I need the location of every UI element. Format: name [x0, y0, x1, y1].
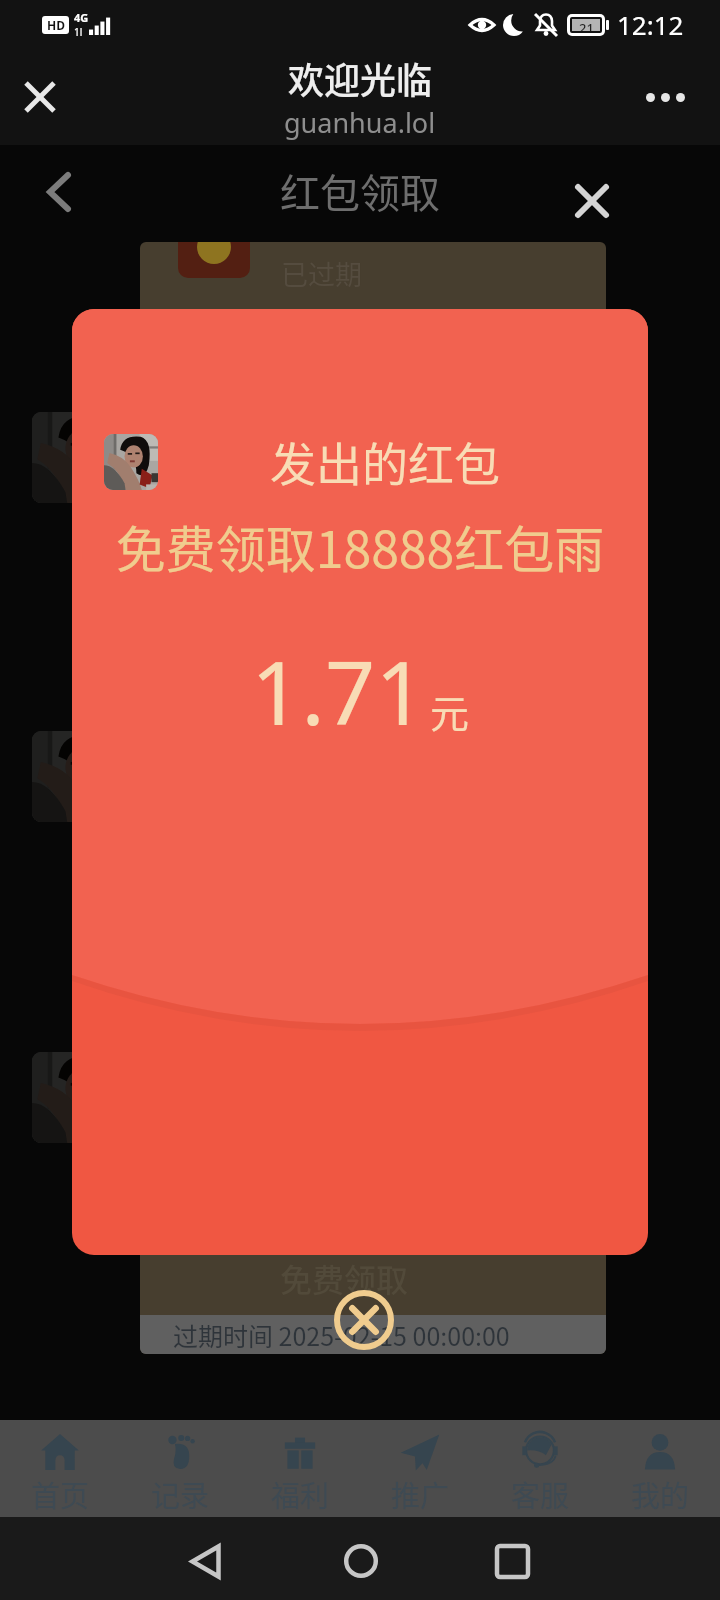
- button[interactable]: 我的: [600, 1420, 720, 1517]
- staticText: HD: [47, 17, 65, 33]
- staticText: 红包领取: [280, 162, 440, 220]
- staticText: 21: [579, 19, 594, 31]
- staticText: 免费领取: [280, 1255, 409, 1301]
- button[interactable]: 记录: [120, 1420, 240, 1517]
- button[interactable]: Back: [173, 1529, 237, 1593]
- staticText: 4G: [74, 10, 89, 25]
- staticText: 记录: [151, 1473, 210, 1515]
- staticText: 1.71: [251, 631, 426, 751]
- staticText: 推广: [391, 1473, 450, 1515]
- button[interactable]: 客服: [480, 1420, 600, 1517]
- staticText: 12:12: [617, 7, 684, 42]
- staticText: 发出的红包: [270, 428, 500, 495]
- staticText: guanhua.lol: [284, 104, 436, 141]
- staticText: 免费领取18888红包雨: [72, 510, 648, 582]
- staticText: 客服: [511, 1473, 570, 1515]
- button[interactable]: 福利: [240, 1420, 360, 1517]
- button[interactable]: Recents: [480, 1529, 544, 1593]
- button[interactable]: Back: [33, 168, 85, 220]
- button[interactable]: Close: [331, 1287, 397, 1353]
- staticText: 过期时间 2025-02-15 00:00:00: [173, 1317, 510, 1353]
- button[interactable]: 推广: [360, 1420, 480, 1517]
- button[interactable]: Home: [329, 1529, 393, 1593]
- staticText: 1l: [74, 25, 83, 39]
- staticText: 福利: [271, 1473, 330, 1515]
- staticText: 首页: [31, 1473, 90, 1515]
- staticText: 元: [430, 683, 470, 739]
- staticText: 已过期: [281, 254, 362, 293]
- staticText: 我的: [631, 1473, 690, 1515]
- staticText: 欢迎光临: [288, 52, 433, 104]
- button[interactable]: Close: [566, 175, 618, 227]
- button[interactable]: Close page: [14, 71, 66, 123]
- button[interactable]: More options: [639, 71, 691, 123]
- button[interactable]: 首页: [0, 1420, 120, 1517]
